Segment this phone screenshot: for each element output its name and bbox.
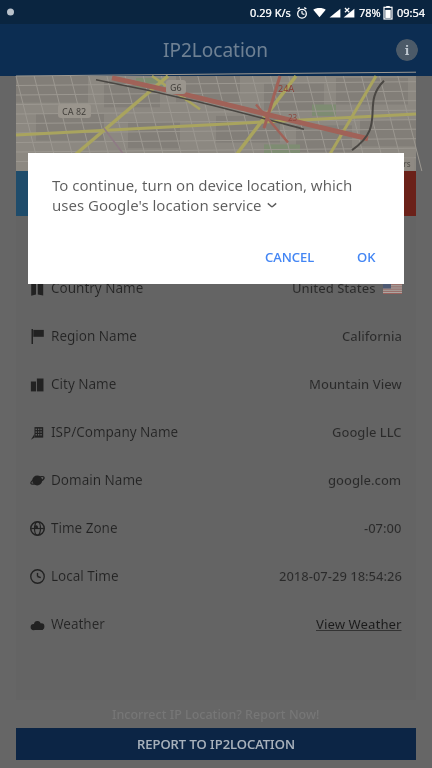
staticText: View Weather [316, 615, 402, 633]
staticText: Mountain View [309, 375, 402, 393]
staticText: ISP/Company Name [51, 423, 179, 441]
staticText: 24A [278, 82, 295, 94]
staticText: City Name [51, 375, 117, 393]
staticText: Country Name [51, 279, 144, 297]
button[interactable]: CANCEL [257, 242, 323, 272]
staticText: Region Name [51, 327, 137, 345]
staticText: CANCEL [265, 248, 315, 266]
staticText: 23 [288, 112, 298, 123]
staticText: REPORT TO IP2LOCATION [137, 735, 295, 753]
button[interactable]: Longitude [216, 171, 416, 216]
staticText: United States [292, 279, 376, 297]
staticText: Local Time [51, 567, 119, 585]
staticText: i [405, 42, 410, 58]
button[interactable]: Country Name [16, 264, 416, 312]
button[interactable]: Latitude [16, 171, 216, 216]
staticText: Time Zone [51, 519, 118, 537]
button[interactable]: IP Address [16, 216, 416, 264]
staticText: Longitude [287, 173, 345, 189]
button[interactable]: REPORT TO IP2LOCATION [16, 728, 416, 760]
staticText: 09:54 [397, 5, 426, 20]
staticText: California [342, 327, 402, 345]
button[interactable]: Local Time [16, 552, 416, 600]
staticText: 2018-07-29 18:54:26 [279, 567, 402, 585]
staticText: G6 [170, 81, 182, 93]
button[interactable]: ISP/Company Name [16, 408, 416, 456]
staticText: To continue, turn on device location, wh… [52, 175, 353, 195]
staticText: Latitude [93, 173, 140, 189]
staticText: Incorrect IP Location? Report Now! [112, 706, 320, 723]
staticText: -122.0785 [275, 190, 358, 215]
button[interactable]: Domain Name [16, 456, 416, 504]
staticText: -07:00 [364, 519, 402, 537]
button[interactable]: Region Name [16, 312, 416, 360]
button[interactable]: Weather [16, 600, 416, 648]
staticText: 0.29 K/s [250, 5, 291, 20]
staticText: Weather [51, 615, 105, 633]
staticText: Google LLC [332, 423, 402, 441]
button[interactable]: Info [396, 39, 418, 61]
staticText: IP2Location [163, 37, 269, 63]
staticText: Mounta [146, 152, 198, 171]
staticText: 78% [359, 5, 381, 20]
staticText: uses Google's location service [52, 195, 262, 215]
button[interactable]: OK [349, 242, 384, 272]
staticText: OK [357, 248, 376, 266]
staticText: contributors [362, 158, 411, 169]
staticText: 37.4060 [83, 190, 150, 215]
staticText: google.com [328, 471, 402, 489]
staticText: CA 82 [62, 105, 87, 117]
button[interactable]: City Name [16, 360, 416, 408]
staticText: Domain Name [51, 471, 143, 489]
button[interactable]: Time Zone [16, 504, 416, 552]
